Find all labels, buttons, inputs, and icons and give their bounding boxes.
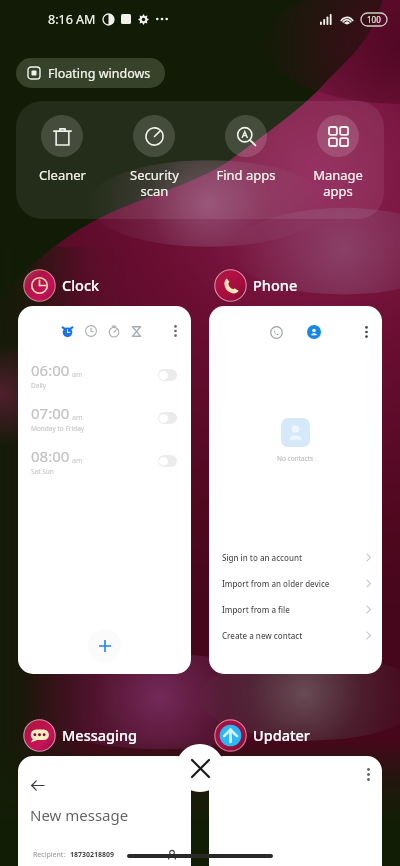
staticText: 08:00 — [31, 446, 70, 466]
button[interactable] — [209, 756, 382, 866]
staticText: 8:16 AM — [48, 11, 96, 28]
other: More options — [174, 325, 177, 337]
staticText: Monday to Friday — [31, 424, 85, 433]
staticText: 07:00 — [31, 403, 70, 423]
button[interactable]: Pick contact — [167, 850, 177, 860]
staticText: Cleaner — [39, 166, 86, 184]
staticText: Clock — [62, 275, 100, 295]
staticText: No contacts — [277, 454, 314, 463]
staticText: am — [72, 370, 83, 380]
button[interactable]: Back — [31, 779, 44, 792]
staticText: 18730218809 — [70, 850, 115, 860]
staticText: Daily — [31, 381, 47, 390]
staticText: Sat Sun — [31, 467, 54, 476]
button[interactable]: Clock — [18, 268, 100, 302]
button[interactable]: Updater — [209, 718, 310, 752]
button[interactable]: Messaging — [18, 718, 138, 752]
button[interactable]: Alarm toggle — [158, 369, 177, 381]
other: Contacts — [307, 325, 321, 339]
staticText: am — [72, 413, 83, 423]
staticText: New message — [30, 805, 129, 825]
staticText: Messaging — [62, 725, 138, 745]
other: Alarm tab — [61, 325, 74, 338]
other: Dial pad — [270, 326, 283, 339]
staticText: Create a new contact — [222, 630, 303, 641]
button[interactable]: Dial pad — [209, 306, 382, 674]
button[interactable]: Import from a file — [222, 596, 371, 622]
button[interactable]: Add alarm — [88, 629, 121, 662]
staticText: 06:00 — [31, 360, 70, 380]
staticText: Manage apps — [313, 166, 363, 199]
button[interactable]: 07:00 — [31, 396, 177, 439]
button[interactable]: Security scan — [108, 101, 200, 219]
button[interactable]: Import from an older device — [222, 570, 371, 596]
button[interactable]: Cleaner — [16, 101, 108, 219]
button[interactable]: Phone — [209, 268, 298, 302]
button[interactable]: Close — [176, 744, 224, 792]
staticText: Import from a file — [222, 604, 290, 615]
other: Clock tab — [85, 325, 97, 337]
button[interactable]: Back — [18, 756, 191, 866]
button[interactable]: Alarm toggle — [158, 455, 177, 467]
button[interactable]: 08:00 — [31, 439, 177, 482]
staticText: Import from an older device — [222, 578, 330, 589]
staticText: Security scan — [130, 166, 179, 199]
button[interactable]: Create a new contact — [222, 622, 371, 648]
staticText: Recipient: — [33, 850, 66, 860]
other: Timer tab — [131, 326, 142, 337]
button[interactable]: Alarm toggle — [158, 412, 177, 424]
staticText: Phone — [253, 275, 298, 295]
staticText: Sign in to an account — [222, 552, 302, 563]
button[interactable]: Sign in to an account — [222, 544, 371, 570]
staticText: am — [72, 456, 83, 466]
button[interactable]: 06:00 — [31, 353, 177, 396]
staticText: Floating windows — [48, 65, 151, 82]
staticText: 100 — [367, 14, 381, 25]
staticText: Updater — [253, 725, 310, 745]
other: More options — [365, 326, 368, 338]
button[interactable]: Floating windows — [16, 58, 165, 88]
button[interactable]: Alarm tab — [18, 306, 191, 674]
staticText: Find apps — [216, 166, 276, 184]
button[interactable]: Manage apps — [292, 101, 384, 219]
button[interactable]: Find apps — [200, 101, 292, 219]
other: Stopwatch tab — [108, 325, 120, 337]
